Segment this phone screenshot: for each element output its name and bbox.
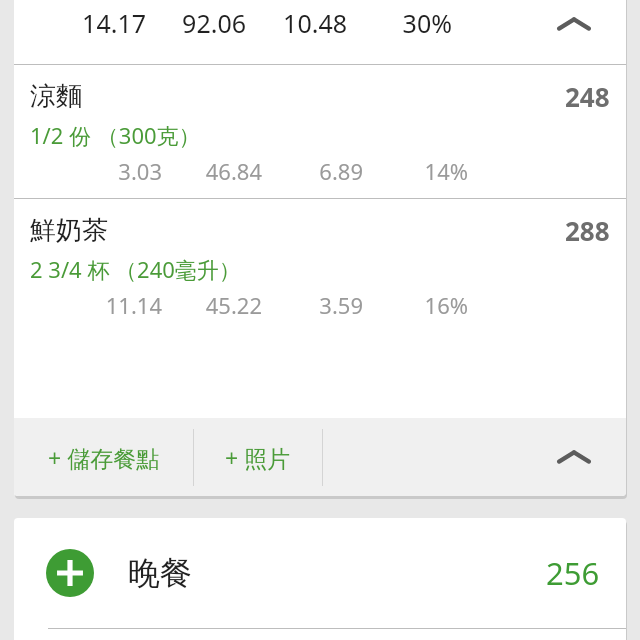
staticText: 248 bbox=[565, 79, 610, 114]
staticText: 3.59 bbox=[262, 290, 363, 320]
staticText: 14% bbox=[363, 156, 468, 186]
button[interactable]: 14.17 bbox=[14, 0, 626, 64]
staticText: 晚餐 bbox=[128, 553, 192, 593]
staticText: 30% bbox=[347, 6, 452, 40]
other: Add food to dinner bbox=[46, 549, 94, 597]
staticText: 涼麵 bbox=[30, 80, 82, 113]
button[interactable]: Add food to dinner bbox=[14, 518, 626, 628]
staticText: 6.89 bbox=[262, 156, 363, 186]
staticText: 10.48 bbox=[246, 6, 347, 40]
staticText: 1/2 份 （300克） bbox=[30, 120, 201, 150]
staticText: 鮮奶茶 bbox=[30, 214, 108, 247]
staticText: 2 3/4 杯 （240毫升） bbox=[30, 254, 241, 284]
staticText: + 照片 bbox=[225, 442, 291, 473]
staticText: 288 bbox=[565, 213, 610, 248]
button[interactable]: 鮮奶茶 bbox=[14, 199, 626, 332]
staticText: 46.84 bbox=[162, 156, 262, 186]
staticText: 92.06 bbox=[146, 6, 246, 40]
button[interactable]: + 照片 bbox=[194, 418, 322, 496]
staticText: 14.17 bbox=[46, 6, 146, 40]
staticText: + 儲存餐點 bbox=[48, 442, 160, 473]
staticText: 16% bbox=[363, 290, 468, 320]
staticText: 11.14 bbox=[62, 290, 162, 320]
button[interactable]: 涼麵 bbox=[14, 65, 626, 198]
staticText: 45.22 bbox=[162, 290, 262, 320]
button[interactable]: + 儲存餐點 bbox=[14, 418, 193, 496]
staticText: 3.03 bbox=[62, 156, 162, 186]
staticText: 256 bbox=[546, 552, 600, 594]
button[interactable]: Collapse meal bbox=[552, 435, 596, 479]
button[interactable]: Collapse bbox=[552, 2, 596, 46]
